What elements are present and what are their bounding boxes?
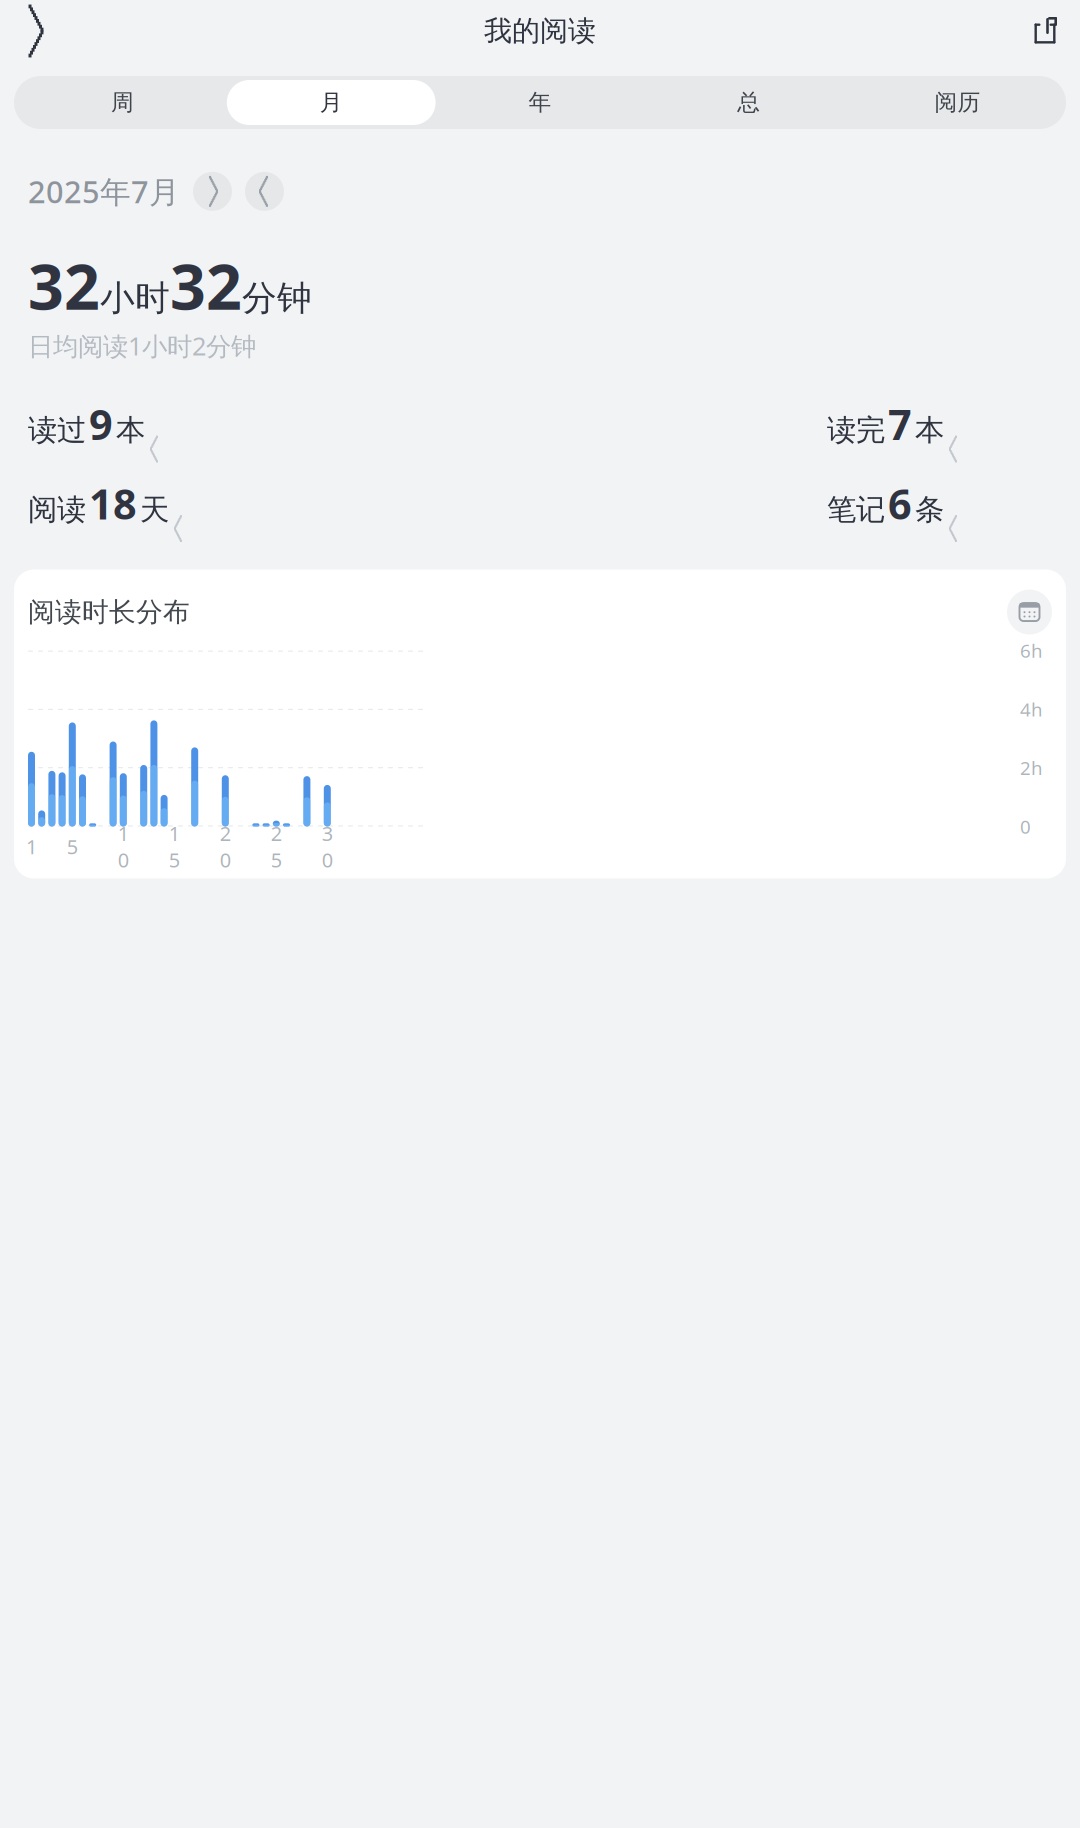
staticText: 2025年7月 bbox=[28, 171, 180, 212]
button[interactable]: 阅读 bbox=[28, 476, 189, 538]
staticText: 10 bbox=[118, 820, 129, 873]
staticText: 20 bbox=[220, 820, 231, 873]
staticText: 30 bbox=[322, 820, 333, 873]
button[interactable]: 返回 bbox=[8, 4, 62, 58]
staticText: 25 bbox=[271, 820, 282, 873]
staticText: 18 bbox=[89, 476, 137, 531]
button[interactable]: 选择日期 bbox=[1007, 589, 1052, 634]
staticText: 我的阅读 bbox=[484, 14, 596, 48]
staticText: 6 bbox=[888, 476, 912, 531]
button[interactable]: 下个月 bbox=[245, 172, 284, 211]
button[interactable]: 读完 bbox=[827, 397, 964, 458]
staticText: 1 bbox=[26, 833, 37, 860]
staticText: 32 bbox=[170, 244, 242, 327]
staticText: 天 bbox=[140, 492, 169, 528]
staticText: 9 bbox=[89, 397, 113, 451]
staticText: 笔记 bbox=[827, 492, 885, 528]
staticText: 总 bbox=[737, 89, 760, 116]
button[interactable]: 读过 bbox=[28, 397, 165, 458]
staticText: 周 bbox=[111, 89, 134, 116]
staticText: 6h bbox=[1020, 638, 1043, 663]
staticText: 小时 bbox=[100, 277, 170, 319]
staticText: 条 bbox=[915, 492, 944, 528]
staticText: 本 bbox=[915, 412, 944, 448]
staticText: 阅读 bbox=[28, 492, 86, 528]
staticText: 日均阅读1小时2分钟 bbox=[28, 329, 256, 362]
staticText: 15 bbox=[169, 820, 180, 873]
staticText: 年 bbox=[528, 89, 551, 116]
staticText: 32 bbox=[28, 244, 100, 327]
staticText: 月 bbox=[320, 89, 343, 116]
staticText: 5 bbox=[67, 833, 78, 860]
button[interactable]: 笔记 bbox=[827, 476, 964, 538]
button[interactable]: 分享 bbox=[1018, 4, 1072, 58]
button[interactable]: 上个月 bbox=[193, 172, 232, 211]
button[interactable]: 年 bbox=[436, 80, 644, 125]
staticText: 读过 bbox=[28, 412, 86, 448]
staticText: 分钟 bbox=[242, 277, 312, 319]
button[interactable]: 总 bbox=[644, 80, 853, 125]
button[interactable]: 周 bbox=[18, 80, 227, 125]
staticText: 本 bbox=[116, 412, 145, 448]
button[interactable]: 阅历 bbox=[853, 80, 1062, 125]
staticText: 读完 bbox=[827, 412, 885, 448]
staticText: 2h bbox=[1020, 755, 1043, 780]
staticText: 4h bbox=[1020, 697, 1043, 722]
button[interactable]: 月 bbox=[227, 80, 436, 125]
staticText: 7 bbox=[888, 397, 912, 451]
staticText: 0 bbox=[1020, 814, 1031, 839]
staticText: 阅历 bbox=[935, 89, 981, 116]
staticText: 阅读时长分布 bbox=[28, 596, 190, 628]
